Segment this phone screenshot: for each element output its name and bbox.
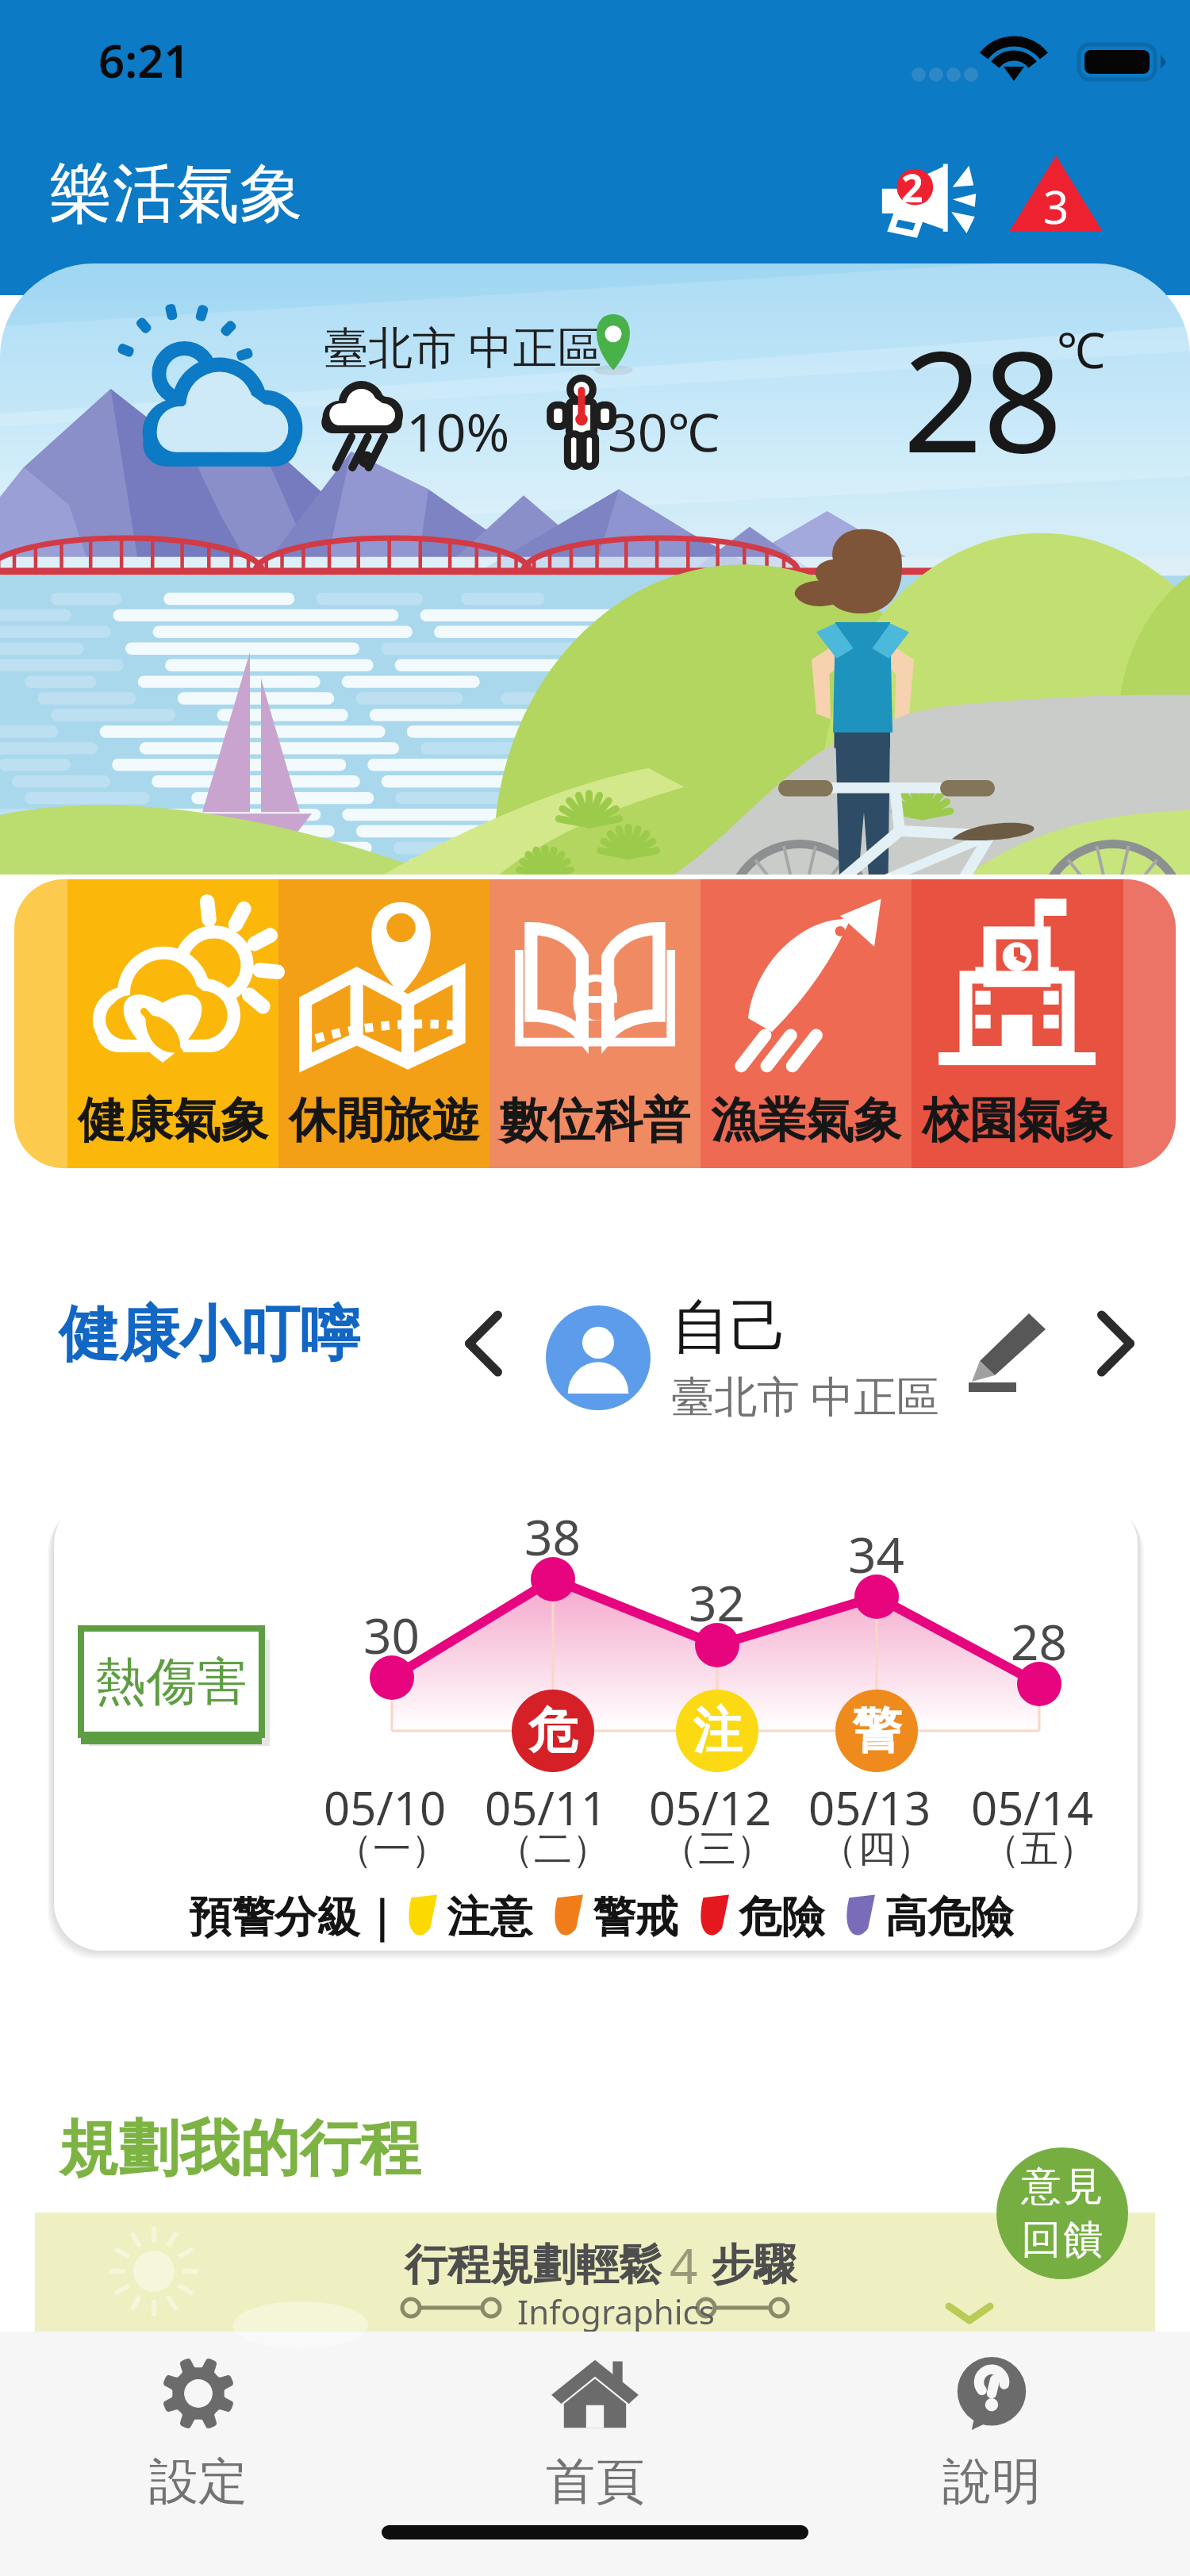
staticText: 預警分級｜ (189, 1890, 402, 1944)
staticText: 樂活氣象 (49, 154, 303, 234)
button[interactable]: 漁業氣象 (701, 1090, 912, 1176)
staticText: 28 (903, 303, 1063, 494)
button[interactable]: 休閒旅遊 (278, 1090, 489, 1176)
staticText: 32 (689, 1569, 745, 1636)
staticText: 熱傷害 (95, 1650, 248, 1714)
staticText: 數位科普 (500, 1090, 690, 1151)
button[interactable]: 意見 (996, 2147, 1128, 2279)
staticText: （三） (660, 1825, 774, 1873)
staticText: 警 (852, 1700, 901, 1762)
staticText: 4 (670, 2232, 698, 2298)
staticText: （四） (820, 1825, 934, 1873)
staticText: 05/10 (324, 1776, 447, 1839)
staticText: 說明 (942, 2451, 1041, 2513)
staticText: 行程規劃輕鬆 (405, 2238, 662, 2292)
staticText: 2 (901, 162, 923, 213)
staticText: 34 (848, 1521, 904, 1587)
staticText: 28 (1011, 1608, 1067, 1674)
staticText: 3 (1043, 176, 1069, 232)
staticText: 臺北市 中正區 (671, 1366, 940, 1424)
staticText: 30 (363, 1601, 420, 1668)
staticText: 警戒 (593, 1890, 678, 1944)
button[interactable]: 健康小叮嚀 (59, 1297, 360, 1373)
staticText: 意見 (1020, 2162, 1104, 2212)
button[interactable]: 數位科普 (489, 1090, 701, 1176)
staticText: 漁業氣象 (711, 1090, 901, 1151)
staticText: 05/12 (649, 1776, 772, 1839)
button[interactable]: Edit (965, 1306, 1052, 1394)
staticText: 05/13 (808, 1776, 931, 1839)
button[interactable]: Announcements (873, 152, 990, 235)
button[interactable]: 規劃我的行程 (59, 2111, 420, 2187)
button[interactable]: 校園氣象 (912, 1090, 1123, 1176)
staticText: （一） (335, 1825, 449, 1873)
staticText: 6:21 (98, 29, 190, 91)
button[interactable]: 說明 (793, 2332, 1190, 2513)
staticText: 自己 (671, 1290, 789, 1364)
staticText: （五） (982, 1825, 1096, 1873)
staticText: 回饋 (1020, 2215, 1104, 2265)
staticText: 校園氣象 (922, 1090, 1112, 1151)
staticText: 注 (693, 1700, 742, 1762)
button[interactable]: 30 (54, 1497, 1138, 1951)
staticText: 健康氣象 (78, 1090, 268, 1151)
staticText: Infographics (517, 2289, 715, 2332)
staticText: 設定 (149, 2451, 248, 2513)
button[interactable]: 樂活氣象 (49, 154, 303, 234)
button[interactable]: Warnings (1009, 156, 1103, 232)
staticText: 首頁 (546, 2451, 644, 2513)
staticText: 10% (406, 395, 510, 467)
staticText: 高危險 (885, 1890, 1013, 1944)
button[interactable]: Next person (1077, 1300, 1154, 1387)
button[interactable]: 設定 (0, 2332, 397, 2513)
staticText: 休閒旅遊 (289, 1090, 479, 1151)
staticText: 步驟 (711, 2238, 797, 2292)
staticText: 05/11 (485, 1776, 608, 1839)
staticText: 危險 (739, 1890, 824, 1944)
staticText: e (568, 925, 622, 1021)
staticText: 38 (524, 1503, 581, 1570)
button[interactable]: 行程規劃輕鬆 (35, 2213, 1155, 2332)
staticText: 臺北市 中正區 (324, 316, 602, 376)
button[interactable]: Previous person (446, 1300, 522, 1387)
button[interactable]: 健康氣象 (67, 1090, 278, 1176)
staticText: ℃ (1057, 316, 1106, 383)
button[interactable]: 首頁 (397, 2332, 793, 2513)
staticText: 注意 (447, 1890, 532, 1944)
staticText: 危 (528, 1700, 578, 1762)
staticText: 05/14 (971, 1776, 1094, 1839)
button[interactable]: 自己 (546, 1290, 940, 1424)
staticText: 30℃ (608, 395, 720, 467)
staticText: （二） (496, 1825, 610, 1873)
